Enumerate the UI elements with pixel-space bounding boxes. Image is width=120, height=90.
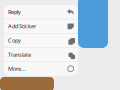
staticText: More... [8,65,27,72]
staticText: Reply [8,8,21,16]
button[interactable]: Copy [4,33,78,47]
button[interactable]: Reply [4,5,78,19]
staticText: Add Sticker [8,22,36,30]
button[interactable]: Translate [4,48,78,61]
button[interactable]: More... [4,62,78,76]
staticText: Copy [8,36,21,44]
button[interactable]: Add Sticker [4,19,78,33]
staticText: Translate [8,51,31,58]
